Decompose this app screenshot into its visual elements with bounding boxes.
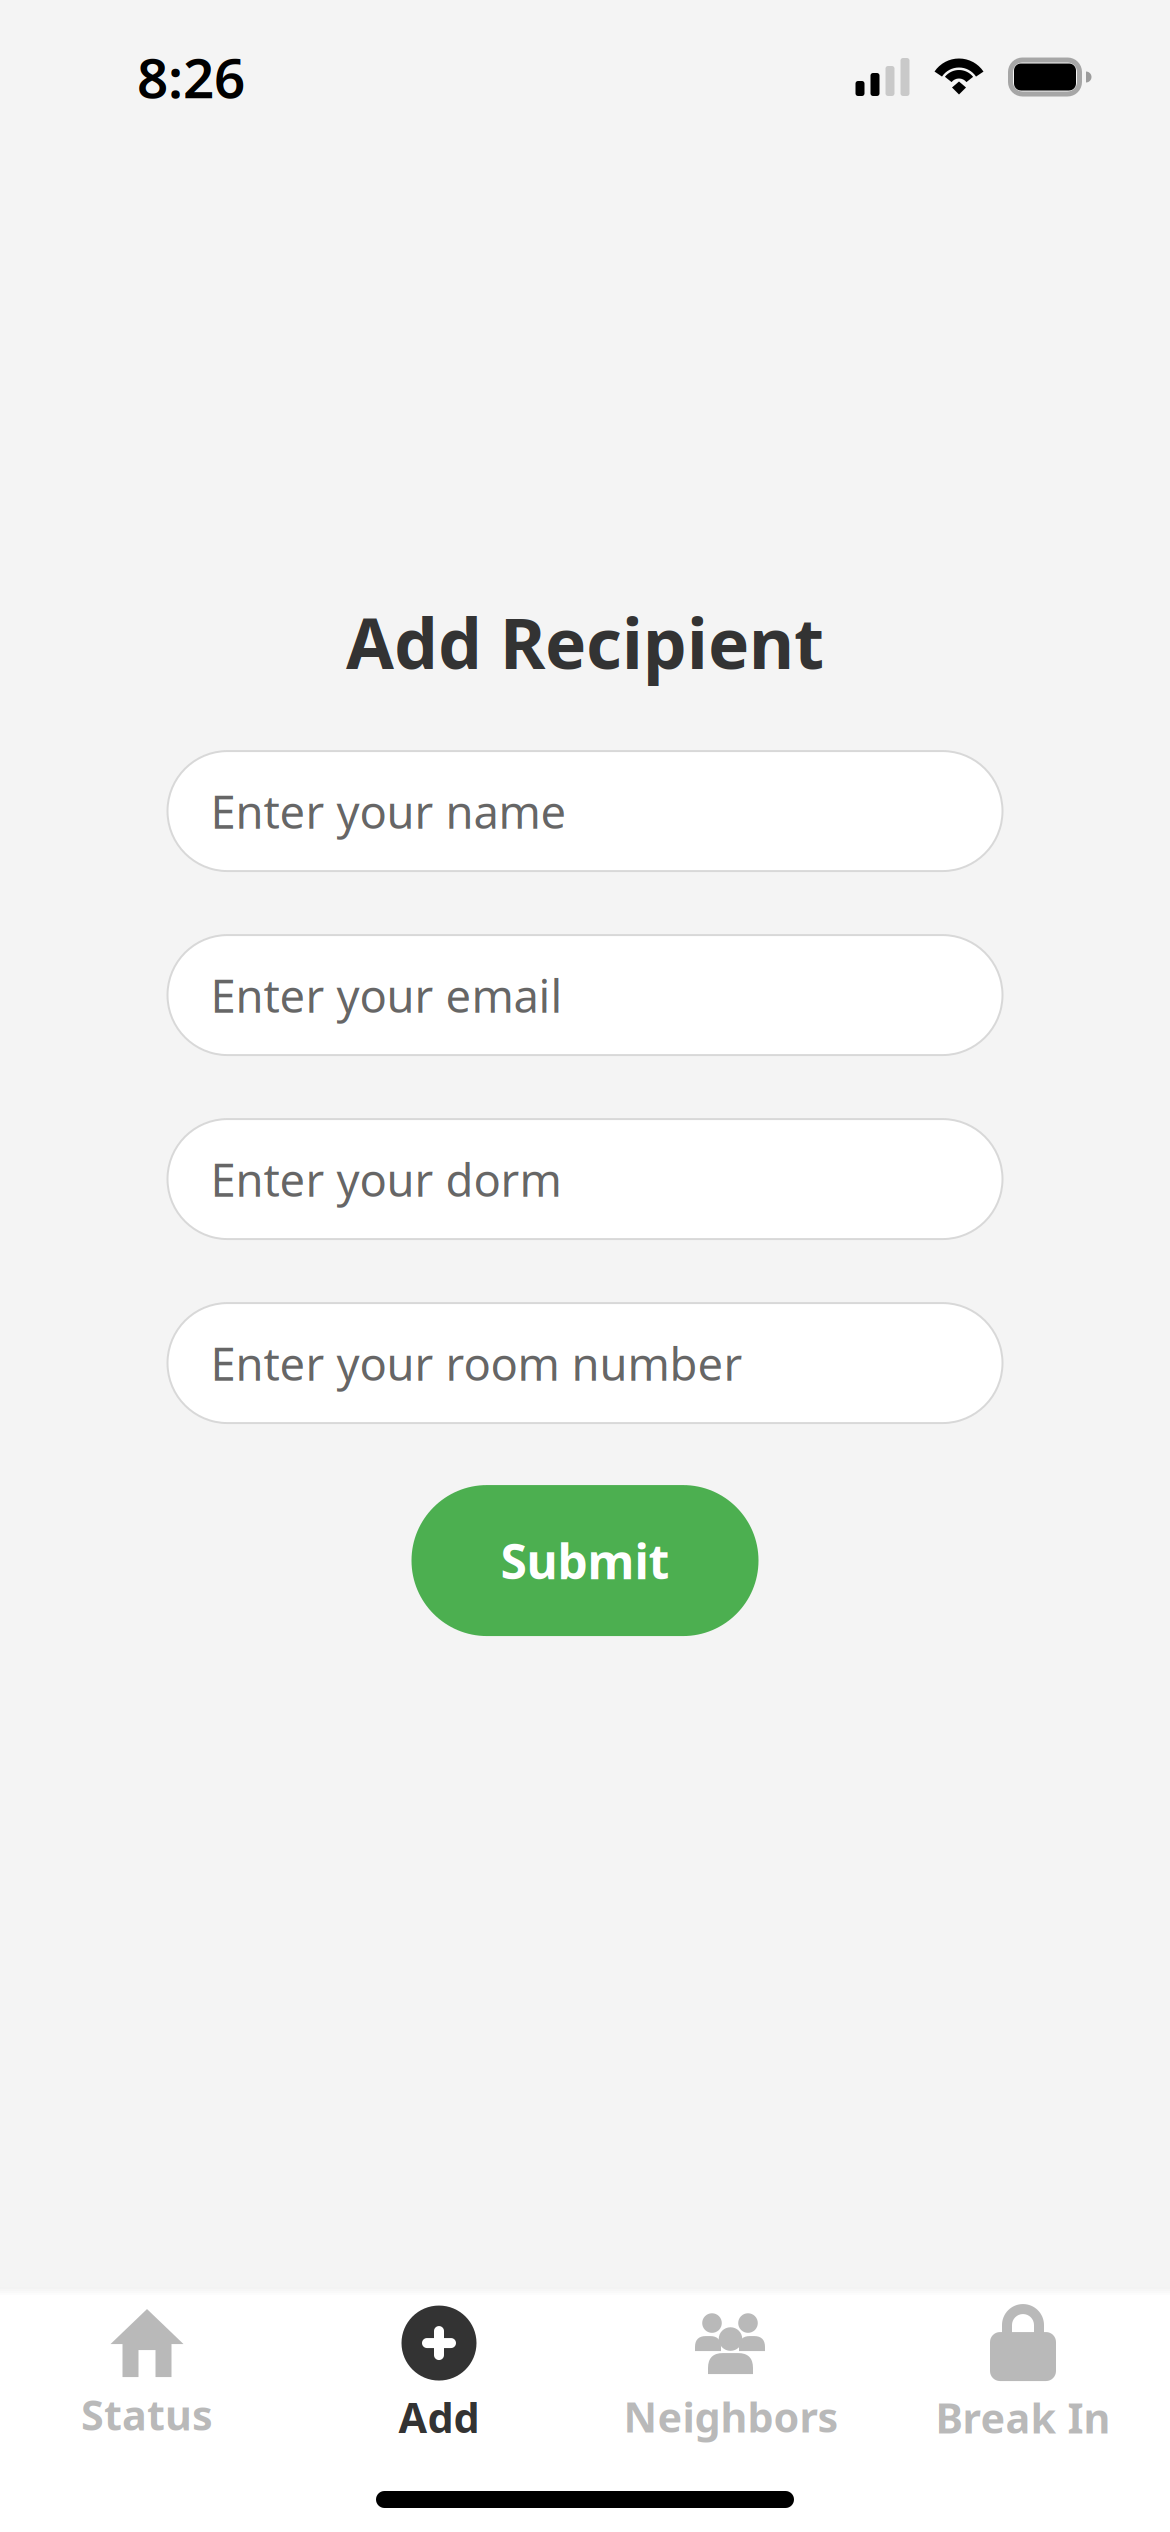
button[interactable]: Break In bbox=[877, 2305, 1169, 2445]
staticText: Add Recipient bbox=[346, 596, 824, 688]
staticText: Status bbox=[81, 2387, 213, 2442]
button[interactable]: Add bbox=[293, 2305, 585, 2445]
button[interactable]: Enter your dorm bbox=[167, 1119, 1002, 1239]
button[interactable]: Enter your name bbox=[167, 751, 1002, 871]
button[interactable]: Enter your email bbox=[167, 935, 1002, 1055]
button[interactable]: Submit bbox=[411, 1485, 758, 1636]
staticText: Enter your room number bbox=[210, 1333, 742, 1393]
staticText: Enter your email bbox=[210, 965, 562, 1025]
staticText: Submit bbox=[500, 1529, 669, 1592]
staticText: Neighbors bbox=[623, 2389, 838, 2444]
staticText: Add bbox=[398, 2390, 479, 2444]
staticText: 8:26 bbox=[137, 41, 245, 113]
staticText: Enter your dorm bbox=[210, 1149, 561, 1209]
button[interactable]: Enter your room number bbox=[167, 1303, 1002, 1423]
button[interactable]: Neighbors bbox=[585, 2305, 877, 2445]
staticText: Enter your name bbox=[210, 781, 566, 841]
staticText: Break In bbox=[935, 2390, 1110, 2445]
button[interactable]: Status bbox=[1, 2305, 293, 2445]
